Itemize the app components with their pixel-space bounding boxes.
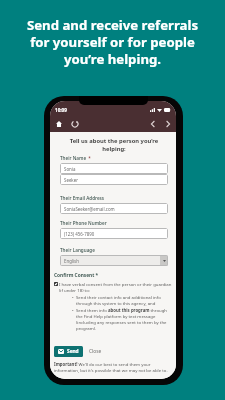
- staticText: Tell us about the person you’re helping:: [54, 137, 174, 153]
- staticText: •: [72, 307, 74, 313]
- staticText: Sonia: [64, 166, 76, 172]
- staticText: Send and receive referrals for yourself …: [0, 16, 225, 68]
- staticText: Important! We’ll do our best to send the…: [54, 361, 174, 373]
- staticText: Their Language: [60, 247, 95, 253]
- button[interactable]: Close: [89, 348, 102, 355]
- button[interactable]: (123) 456-7890: [60, 228, 168, 239]
- button[interactable]: Confirm consent checkbox: [54, 282, 58, 286]
- staticText: 10:09: [55, 107, 67, 113]
- button[interactable]: SoniaSeeker@email.com: [60, 203, 168, 214]
- button[interactable]: Home: [53, 118, 64, 129]
- button[interactable]: Reload: [69, 118, 80, 129]
- button[interactable]: Sonia: [60, 163, 168, 174]
- staticText: SoniaSeeker@email.com: [64, 206, 115, 212]
- staticText: English: [64, 258, 79, 264]
- staticText: Their Name: [60, 155, 87, 161]
- button[interactable]: Send: [54, 346, 83, 357]
- staticText: •: [72, 294, 74, 300]
- staticText: Confirm Consent *: [54, 272, 99, 279]
- staticText: Their Email Address: [60, 195, 105, 201]
- button[interactable]: Back: [147, 118, 158, 129]
- button[interactable]: Forward: [162, 118, 173, 129]
- staticText: Their Phone Number: [60, 220, 107, 226]
- staticText: Send them info about this program throug…: [76, 307, 168, 331]
- button[interactable]: Their Language: English: [60, 255, 168, 266]
- staticText: Send their contact info and additional i…: [76, 294, 168, 306]
- staticText: *: [87, 155, 91, 161]
- staticText: Send: [67, 348, 79, 355]
- button[interactable]: Seeker: [60, 174, 168, 185]
- staticText: (123) 456-7890: [64, 231, 95, 237]
- staticText: I have verbal consent from the person or…: [59, 281, 174, 293]
- staticText: Seeker: [64, 177, 78, 183]
